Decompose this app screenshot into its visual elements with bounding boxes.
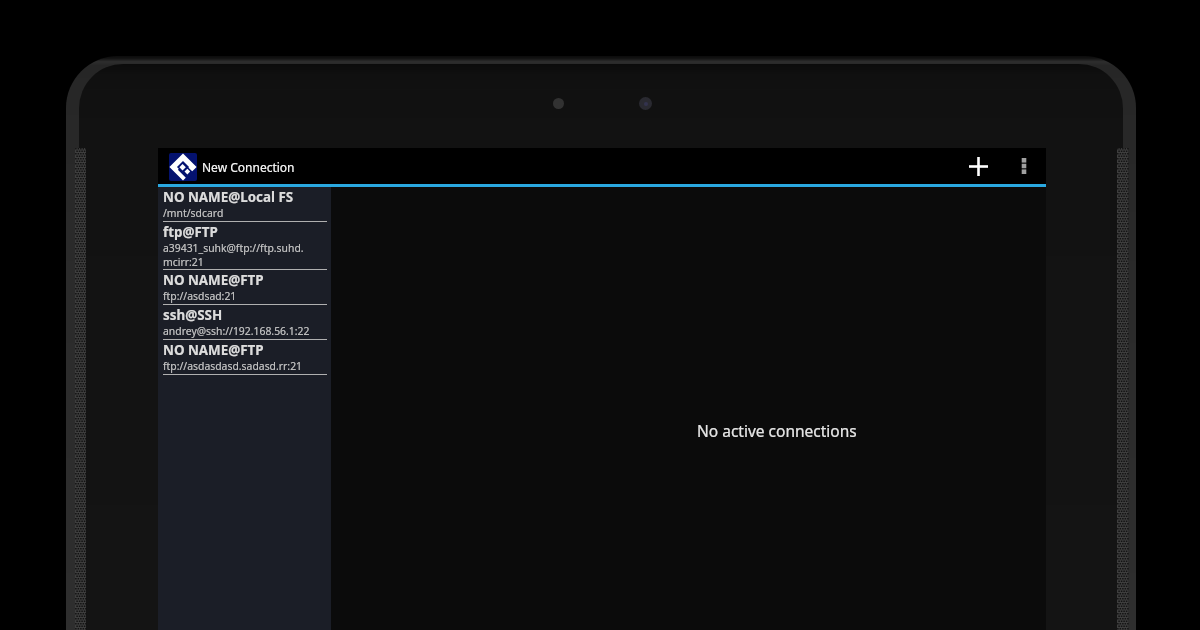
staticText: No active connections (697, 420, 857, 441)
button[interactable]: ssh@SSH (158, 305, 331, 340)
button[interactable]: ftp@FTP (158, 222, 331, 270)
staticText: ftp@FTP (163, 223, 218, 241)
button[interactable]: NO NAME@Local FS (158, 187, 331, 222)
button[interactable]: NO NAME@FTP (158, 340, 331, 375)
staticText: NO NAME@Local FS (163, 188, 294, 206)
button[interactable]: Add connection (955, 148, 1001, 184)
staticText: ssh@SSH (163, 306, 223, 324)
staticText: NO NAME@FTP (163, 341, 264, 359)
staticText: ftp://asdasdasd.sadasd.rr:21 (163, 359, 303, 373)
staticText: /mnt/sdcard (163, 206, 224, 220)
staticText: ftp://asdsad:21 (163, 289, 237, 303)
other: App logo (169, 153, 197, 181)
staticText: New Connection (202, 159, 295, 175)
staticText: a39431_suhk@ftp://ftp.suhd. (163, 241, 304, 255)
button[interactable]: NO NAME@FTP (158, 270, 331, 305)
staticText: NO NAME@FTP (163, 271, 264, 289)
staticText: andrey@ssh://192.168.56.1:22 (163, 324, 310, 338)
staticText: mcirr:21 (163, 255, 204, 269)
button[interactable]: App logo (158, 148, 305, 184)
button[interactable]: More options (1001, 148, 1046, 184)
